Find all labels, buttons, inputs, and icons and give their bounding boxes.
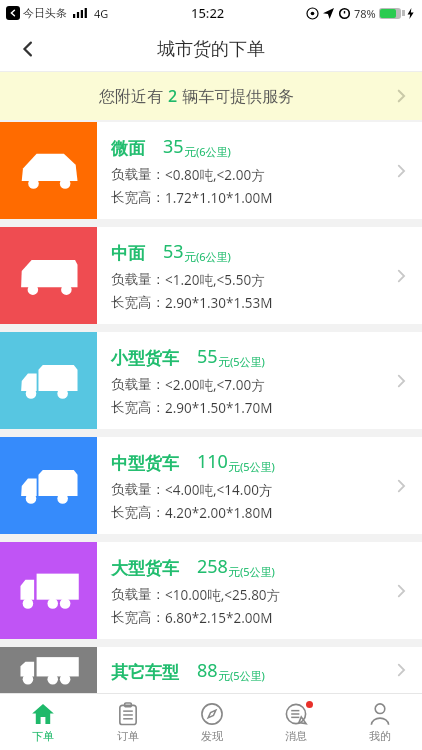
staticText: 15:22	[191, 4, 225, 22]
button[interactable]: Back	[8, 29, 48, 69]
button[interactable]: 中型货车	[0, 437, 422, 534]
staticText: 4.20*2.00*1.80M	[165, 504, 273, 522]
staticText: 长宽高：	[111, 609, 165, 626]
button[interactable]: 您附近有	[0, 72, 422, 120]
button[interactable]: 发现	[170, 694, 254, 750]
staticText: 长宽高：	[111, 189, 165, 206]
staticText: 4G	[94, 6, 109, 21]
staticText: 78%	[354, 6, 376, 21]
button[interactable]: 小型货车	[0, 332, 422, 429]
staticText: 负载量：	[111, 586, 165, 603]
staticText: (5公里)	[230, 668, 265, 683]
staticText: 辆车可提供服务	[178, 85, 295, 107]
staticText: 微面	[111, 138, 145, 159]
staticText: 小型货车	[111, 348, 179, 369]
staticText: 负载量：	[111, 166, 165, 183]
staticText: <10.00吨,<25.80方	[165, 586, 281, 604]
staticText: (5公里)	[240, 459, 275, 474]
staticText: 发现	[201, 729, 223, 743]
staticText: 元	[228, 564, 240, 579]
staticText: 2.90*1.30*1.53M	[165, 294, 273, 312]
staticText: 我的	[369, 729, 391, 743]
staticText: 中型货车	[111, 453, 179, 474]
staticText: 订单	[117, 729, 139, 743]
staticText: 中面	[111, 243, 145, 264]
staticText: 1.72*1.10*1.00M	[165, 189, 273, 207]
button[interactable]: 消息	[254, 694, 338, 750]
staticText: 258	[197, 554, 228, 579]
staticText: 负载量：	[111, 271, 165, 288]
staticText: <2.00吨,<7.00方	[165, 376, 265, 394]
staticText: 您附近有	[99, 85, 168, 107]
staticText: 长宽高：	[111, 504, 165, 521]
staticText: (5公里)	[230, 354, 265, 369]
staticText: 53	[163, 239, 184, 264]
staticText: 元	[228, 459, 240, 474]
staticText: 元	[184, 249, 196, 264]
staticText: 负载量：	[111, 481, 165, 498]
staticText: <4.00吨,<14.00方	[165, 481, 273, 499]
staticText: 元	[218, 354, 230, 369]
staticText: 长宽高：	[111, 294, 165, 311]
staticText: 2.90*1.50*1.70M	[165, 399, 273, 417]
staticText: 110	[197, 449, 228, 474]
staticText: <1.20吨,<5.50方	[165, 271, 265, 289]
staticText: 今日头条	[23, 6, 67, 20]
staticText: 2	[168, 85, 178, 107]
staticText: 35	[163, 134, 184, 159]
staticText: 消息	[285, 729, 307, 743]
button[interactable]: 其它车型	[0, 647, 422, 693]
staticText: 其它车型	[111, 662, 179, 683]
button[interactable]: 大型货车	[0, 542, 422, 639]
staticText: 城市货的下单	[157, 38, 265, 61]
staticText: 55	[197, 344, 218, 369]
staticText: 88	[197, 658, 218, 683]
staticText: (6公里)	[196, 144, 231, 159]
staticText: (6公里)	[196, 249, 231, 264]
staticText: 6.80*2.15*2.00M	[165, 609, 273, 627]
staticText: (5公里)	[240, 564, 275, 579]
button[interactable]: 中面	[0, 227, 422, 324]
staticText: 负载量：	[111, 376, 165, 393]
staticText: 元	[184, 144, 196, 159]
button[interactable]: 微面	[0, 122, 422, 219]
button[interactable]: 我的	[338, 694, 422, 750]
button[interactable]: 下单	[0, 694, 85, 750]
staticText: 大型货车	[111, 558, 179, 579]
staticText: <0.80吨,<2.00方	[165, 166, 265, 184]
staticText: 元	[218, 668, 230, 683]
staticText: 下单	[32, 729, 54, 743]
staticText: 长宽高：	[111, 399, 165, 416]
button[interactable]: 订单	[85, 694, 170, 750]
